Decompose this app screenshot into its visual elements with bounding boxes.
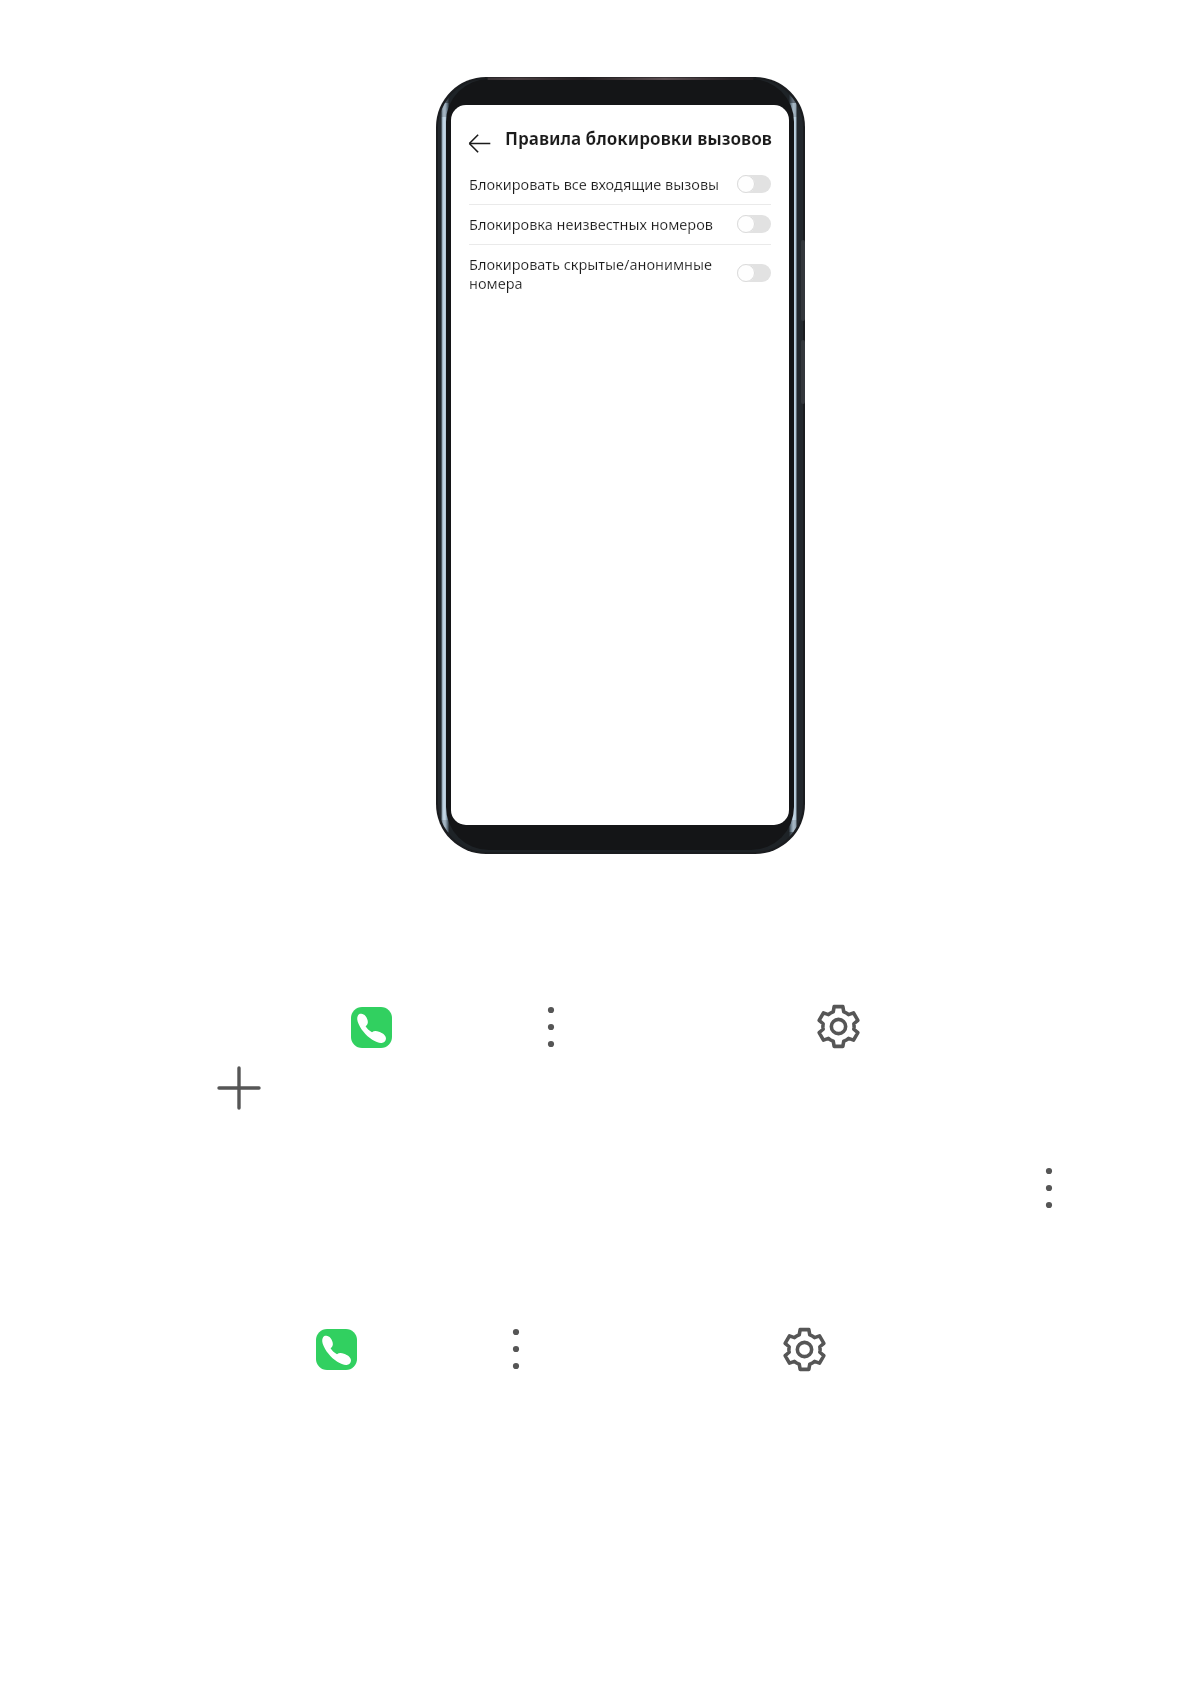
staticText: Блокировать все входящие вызовы bbox=[469, 174, 737, 194]
button[interactable]: More options bbox=[537, 1003, 565, 1051]
button[interactable]: Settings bbox=[814, 1002, 863, 1051]
button[interactable]: Back bbox=[457, 121, 501, 165]
button[interactable]: Toggle bbox=[737, 264, 771, 282]
button[interactable]: Phone app bbox=[316, 1329, 357, 1370]
button[interactable]: Toggle bbox=[737, 215, 771, 233]
button[interactable]: Phone app bbox=[351, 1007, 392, 1048]
button[interactable]: Settings bbox=[780, 1325, 829, 1374]
staticText: Правила блокировки вызовов bbox=[505, 127, 772, 150]
button[interactable]: More options bbox=[502, 1325, 530, 1373]
button[interactable]: Toggle bbox=[737, 175, 771, 193]
button[interactable]: Add bbox=[215, 1064, 263, 1112]
staticText: Блокировать скрытые/анонимные номера bbox=[469, 254, 737, 293]
staticText: Блокировка неизвестных номеров bbox=[469, 214, 737, 234]
button[interactable]: Блокировка неизвестных номеров bbox=[451, 204, 789, 244]
button[interactable]: Блокировать все входящие вызовы bbox=[451, 164, 789, 204]
button[interactable]: More options bbox=[1035, 1164, 1063, 1212]
button[interactable]: Блокировать скрытые/анонимные номера bbox=[451, 249, 789, 297]
